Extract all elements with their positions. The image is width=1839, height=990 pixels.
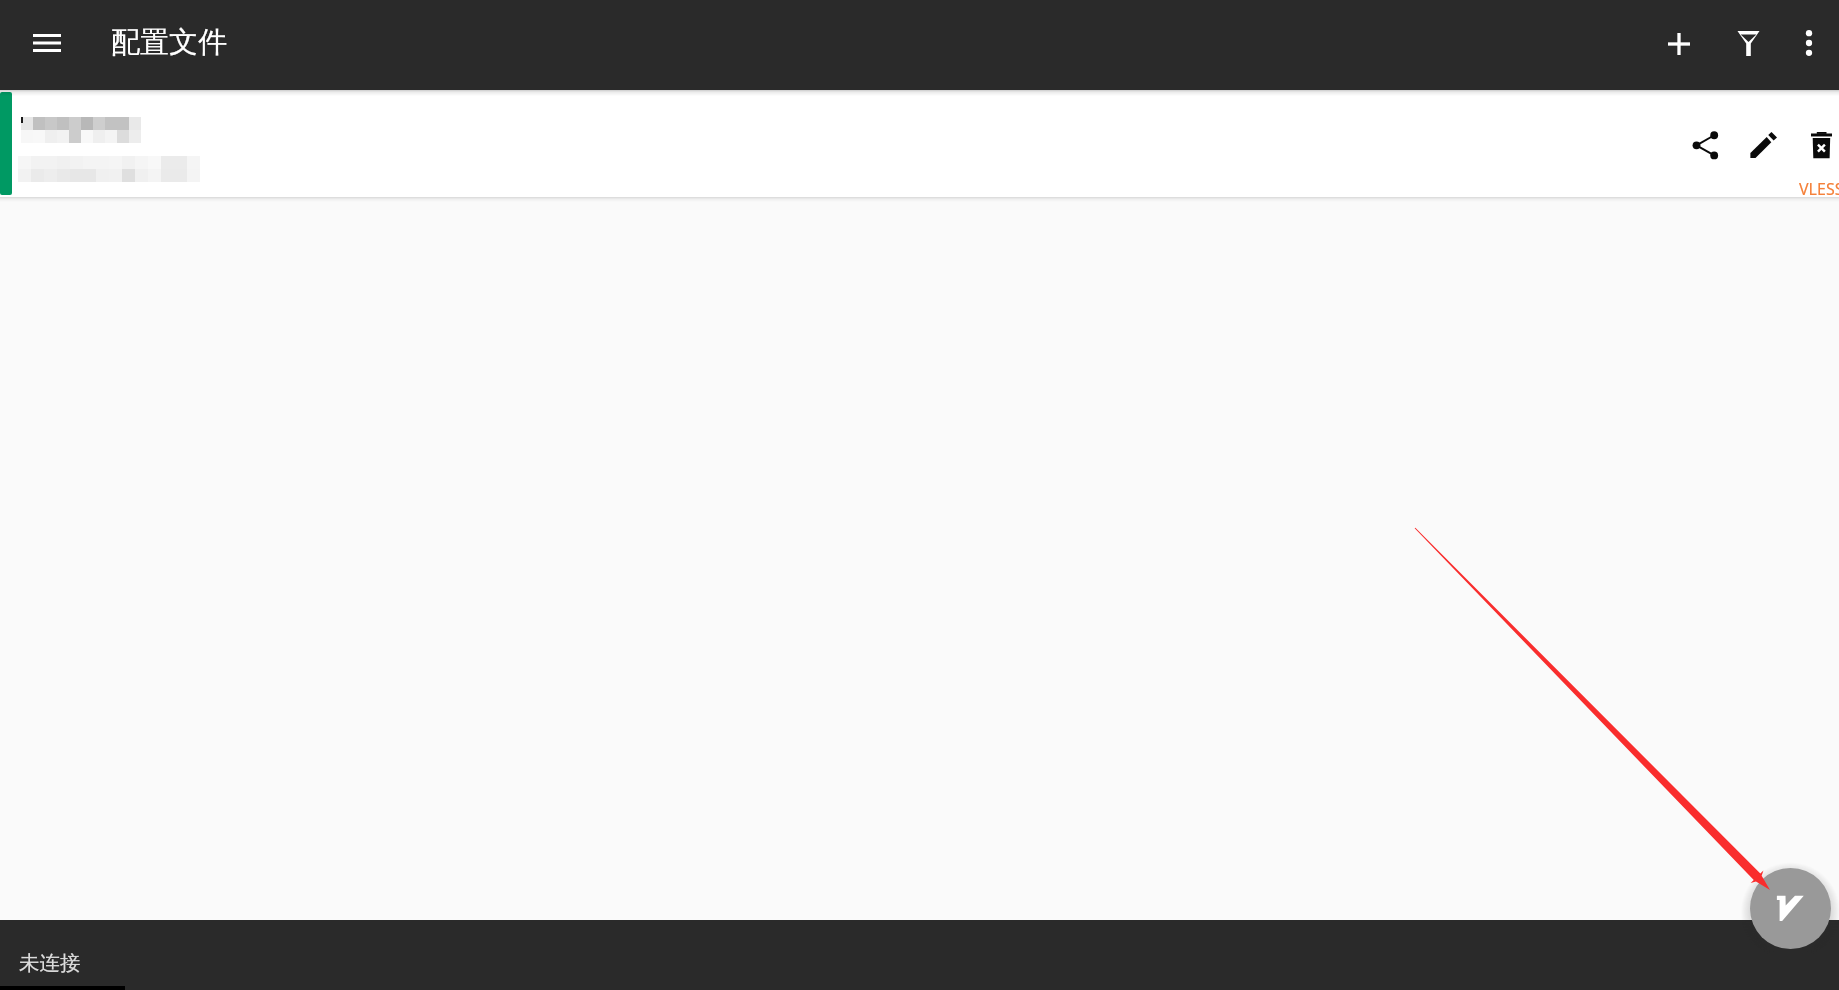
button[interactable]: Delete: [1792, 116, 1839, 174]
button[interactable]: Filter: [1720, 15, 1776, 71]
button[interactable]: Connect: [1750, 868, 1831, 949]
button[interactable]: 未连接: [0, 920, 1839, 990]
button[interactable]: More options: [1781, 15, 1837, 71]
staticText: 未连接: [19, 950, 81, 976]
button[interactable]: Share: [1676, 116, 1734, 174]
button[interactable]: Edit: [1734, 116, 1792, 174]
staticText: VLESS: [1799, 178, 1839, 200]
button[interactable]: Share: [0, 90, 1839, 197]
button[interactable]: Add profile: [1651, 16, 1707, 72]
button[interactable]: Open navigation menu: [19, 15, 75, 71]
staticText: 配置文件: [111, 24, 227, 61]
